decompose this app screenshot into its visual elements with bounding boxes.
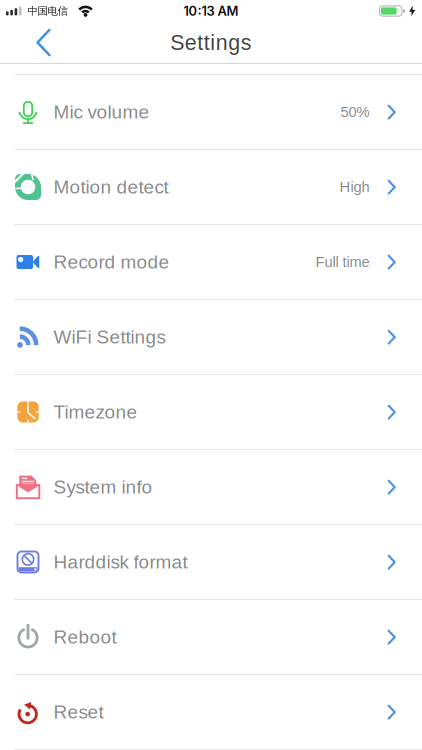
staticText: 中国电信: [27, 4, 67, 17]
staticText: Harddisk format: [53, 551, 187, 573]
button[interactable]: Reboot: [0, 600, 422, 674]
button[interactable]: WiFi Settings: [0, 300, 422, 374]
staticText: Settings: [170, 31, 252, 54]
staticText: 10:13 AM: [183, 3, 238, 19]
staticText: Reboot: [53, 626, 116, 648]
staticText: Reset: [53, 701, 103, 723]
button[interactable]: [0, 22, 71, 62]
staticText: High: [339, 179, 369, 195]
staticText: Timezone: [53, 401, 137, 423]
button[interactable]: Harddisk format: [0, 525, 422, 599]
staticText: Full time: [315, 254, 369, 270]
staticText: System info: [53, 476, 152, 498]
button[interactable]: Timezone: [0, 375, 422, 449]
staticText: Mic volume: [53, 101, 149, 123]
button[interactable]: System info: [0, 450, 422, 524]
button[interactable]: Motion detect: [0, 150, 422, 224]
staticText: Motion detect: [53, 176, 168, 198]
staticText: Record mode: [53, 251, 169, 273]
staticText: 50%: [340, 104, 369, 120]
button[interactable]: Record mode: [0, 225, 422, 299]
button[interactable]: Mic volume: [0, 75, 422, 149]
button[interactable]: Reset: [0, 675, 422, 749]
staticText: WiFi Settings: [53, 326, 165, 348]
